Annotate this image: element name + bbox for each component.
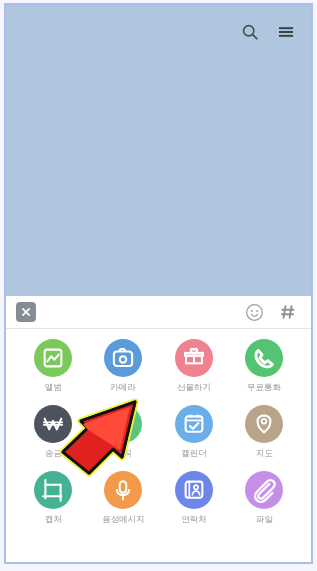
- staticText: 뮤직: [115, 448, 132, 459]
- button[interactable]: 앨범: [20, 339, 86, 393]
- staticText: 선물하기: [177, 382, 211, 393]
- button[interactable]: 뮤직: [90, 405, 156, 459]
- button[interactable]: 선물하기: [161, 339, 227, 393]
- staticText: 카메라: [110, 382, 136, 393]
- staticText: 파일: [256, 514, 273, 525]
- button[interactable]: Close: [16, 302, 36, 322]
- staticText: 송금: [45, 448, 62, 459]
- button[interactable]: 캡처: [20, 471, 86, 525]
- staticText: 캡처: [45, 514, 62, 525]
- button[interactable]: 카메라: [90, 339, 156, 393]
- staticText: 음성메시지: [102, 514, 145, 525]
- button[interactable]: Emoji: [241, 299, 267, 325]
- button[interactable]: Menu: [271, 17, 301, 47]
- staticText: 캘린더: [181, 448, 207, 459]
- staticText: 지도: [256, 448, 273, 459]
- staticText: 앨범: [45, 382, 62, 393]
- button[interactable]: 송금: [20, 405, 86, 459]
- button[interactable]: 캘린더: [161, 405, 227, 459]
- button[interactable]: Search: [235, 17, 265, 47]
- button[interactable]: Hashtag: [275, 299, 301, 325]
- button[interactable]: 연락처: [161, 471, 227, 525]
- button[interactable]: 파일: [231, 471, 297, 525]
- staticText: 무료통화: [247, 382, 281, 393]
- button[interactable]: 지도: [231, 405, 297, 459]
- button[interactable]: 음성메시지: [90, 471, 156, 525]
- staticText: 연락처: [181, 514, 207, 525]
- button[interactable]: 무료통화: [231, 339, 297, 393]
